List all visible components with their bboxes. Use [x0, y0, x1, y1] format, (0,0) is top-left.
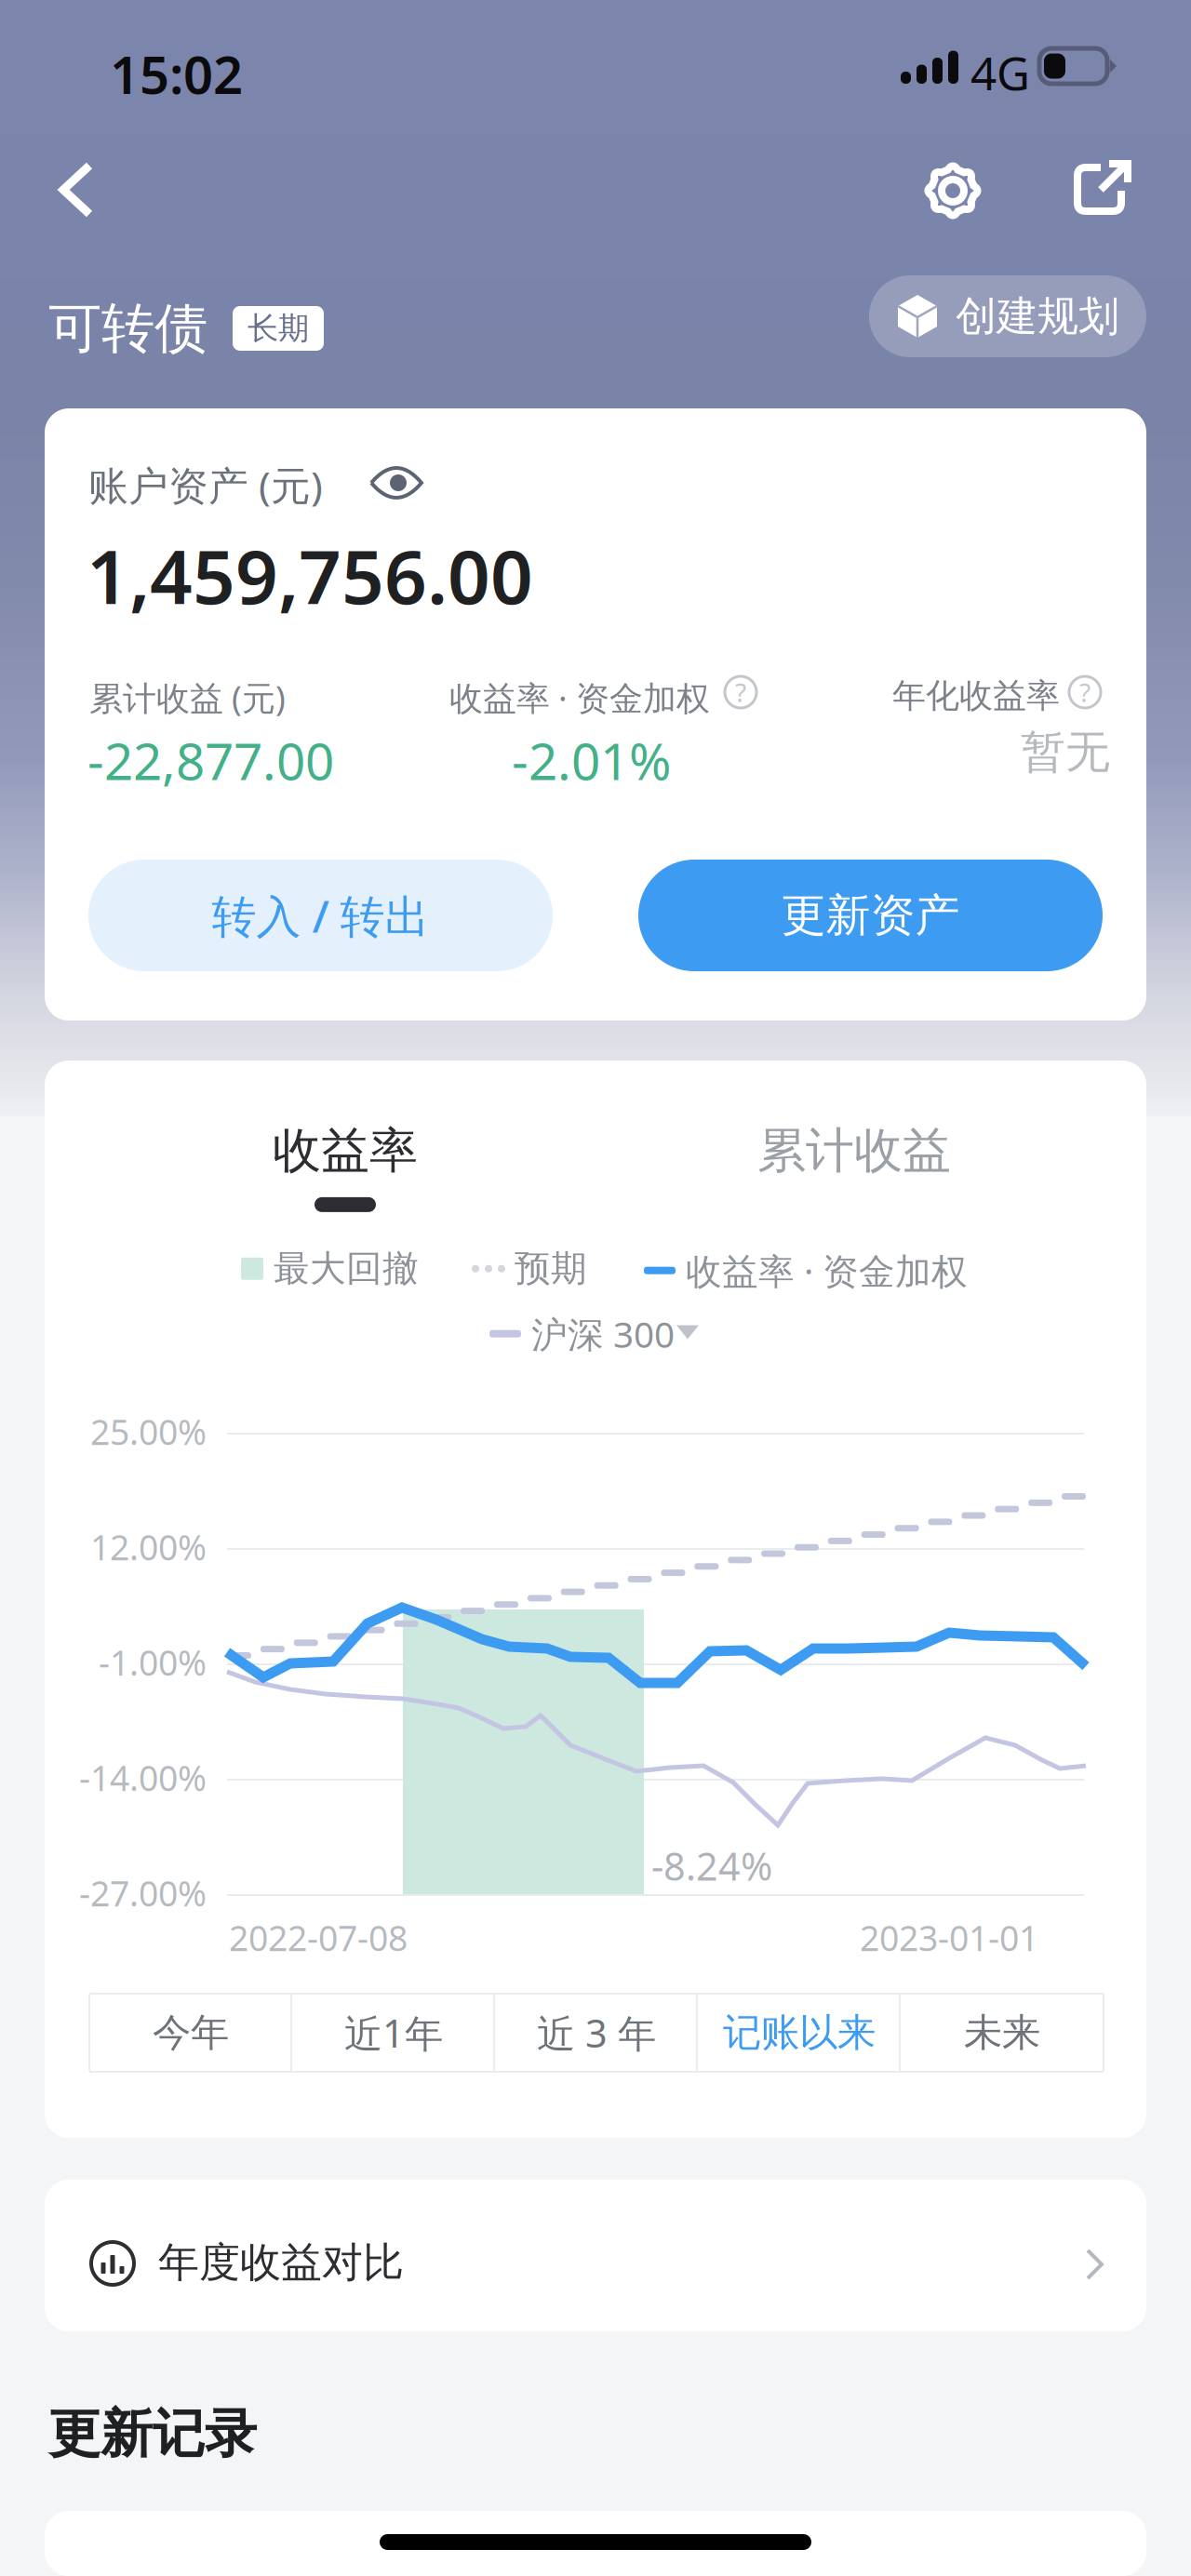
button[interactable]: 未来	[901, 1994, 1104, 2072]
staticText: ?	[1079, 675, 1091, 709]
staticText: -22,877.00	[87, 727, 334, 794]
button[interactable]: 设置	[919, 157, 986, 224]
button[interactable]: 创建规划	[869, 275, 1146, 357]
button[interactable]: 近 3 年	[495, 1994, 698, 2072]
button[interactable]: 返回	[43, 147, 115, 233]
button[interactable]: 更新资产	[638, 860, 1103, 971]
staticText: 沪深 300	[531, 1310, 675, 1358]
staticText: -8.24%	[651, 1840, 772, 1891]
staticText: -2.01%	[512, 727, 671, 794]
staticText: 账户资产 (元)	[88, 459, 323, 511]
staticText: -1.00%	[99, 1639, 207, 1685]
button[interactable]: 近1年	[292, 1994, 495, 2072]
staticText: 12.00%	[90, 1524, 207, 1570]
staticText: 近1年	[344, 2007, 443, 2058]
staticText: 未来	[964, 2009, 1040, 2056]
button[interactable]: 转入 / 转出	[88, 860, 553, 971]
staticText: 收益率	[273, 1121, 418, 1180]
staticText: 长期	[248, 309, 309, 347]
staticText: 2022-07-08	[229, 1915, 408, 1961]
button[interactable]: 收益率	[273, 1121, 418, 1212]
staticText: 2023-01-01	[860, 1915, 1038, 1961]
staticText: 记账以来	[723, 2009, 876, 2056]
staticText: 收益率 · 资金加权	[686, 1247, 968, 1294]
button[interactable]: 分享	[1067, 157, 1134, 224]
staticText: ?	[735, 675, 746, 709]
button[interactable]: 今年	[89, 1994, 292, 2072]
staticText: 创建规划	[956, 291, 1119, 341]
staticText: 近 3 年	[537, 2007, 656, 2058]
button[interactable]: 记账以来	[698, 1994, 901, 2072]
staticText: -14.00%	[79, 1755, 207, 1801]
staticText: 25.00%	[90, 1408, 207, 1455]
staticText: 预期	[515, 1247, 587, 1291]
staticText: 年化收益率	[892, 675, 1060, 717]
staticText: 暂无	[1021, 725, 1110, 780]
staticText: 15:02	[110, 39, 243, 108]
button[interactable]: 年度收益对比	[45, 2180, 1146, 2331]
staticText: 累计收益	[757, 1121, 951, 1180]
button[interactable]: 累计收益	[757, 1121, 951, 1180]
staticText: -27.00%	[79, 1870, 207, 1916]
staticText: 更新资产	[781, 888, 960, 943]
staticText: 4G	[970, 42, 1030, 103]
staticText: 转入 / 转出	[212, 886, 429, 945]
staticText: 更新记录	[48, 2402, 257, 2466]
staticText: 最大回撤	[274, 1247, 419, 1291]
staticText: 可转债	[48, 296, 207, 361]
staticText: 收益率 · 资金加权	[449, 675, 710, 720]
staticText: 今年	[153, 2009, 229, 2056]
staticText: 1,459,756.00	[87, 526, 533, 624]
staticText: 年度收益对比	[158, 2237, 404, 2288]
staticText: 累计收益 (元)	[89, 675, 286, 720]
